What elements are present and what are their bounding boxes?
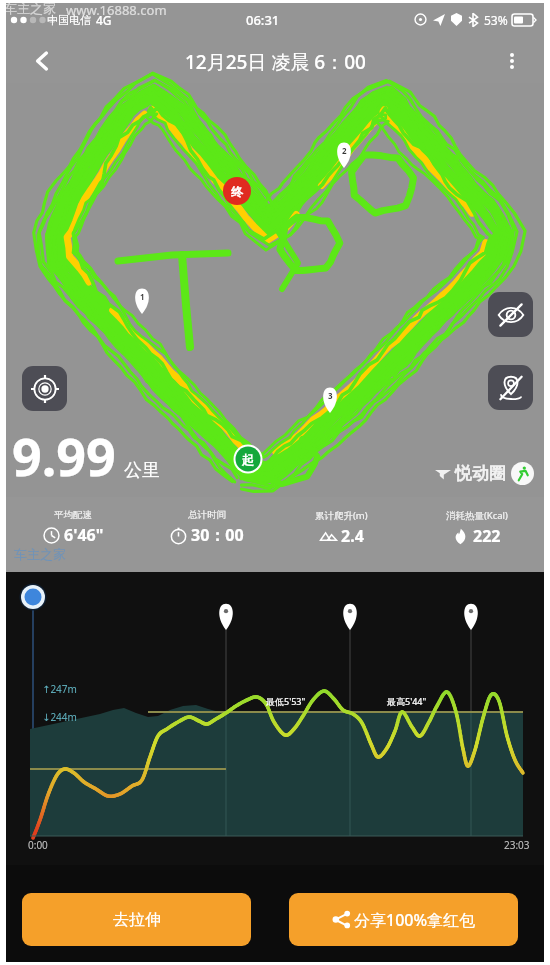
staticText: 0:00 — [28, 838, 48, 852]
staticText: 53% — [484, 12, 508, 28]
staticText: 最高5'44" — [387, 695, 427, 707]
staticText: www.16888.com — [66, 1, 167, 19]
button[interactable]: Map type off — [488, 365, 533, 410]
staticText: 06:31 — [246, 11, 280, 29]
staticText: 悦动圈 — [455, 463, 506, 484]
staticText: 4G — [96, 12, 112, 28]
button[interactable]: Back — [16, 35, 68, 87]
staticText: 23:03 — [504, 838, 530, 852]
staticText: 最低5'53" — [266, 695, 306, 707]
staticText: 9.99 — [12, 420, 116, 491]
staticText: ↓244m — [42, 710, 77, 724]
staticText: 6'46" — [64, 524, 104, 546]
staticText: 2 — [342, 145, 347, 156]
staticText: 12月25日 凌晨 6：00 — [185, 49, 366, 75]
staticText: 去拉伸 — [113, 910, 161, 930]
staticText: 222 — [473, 525, 501, 547]
staticText: 车主之家 — [4, 0, 56, 16]
staticText: 30：00 — [191, 524, 244, 546]
staticText: 3 — [328, 390, 333, 401]
staticText: 消耗热量(Kcal) — [446, 509, 508, 522]
button[interactable]: Hide track — [488, 292, 533, 337]
button[interactable]: 去拉伸 — [22, 893, 251, 946]
button[interactable]: Locate — [22, 366, 67, 411]
staticText: 中国电信 — [47, 13, 91, 27]
staticText: 2.4 — [341, 525, 364, 547]
staticText: 公里 — [124, 459, 160, 482]
staticText: 累计爬升(m) — [315, 509, 368, 522]
staticText: 1 — [140, 291, 145, 302]
button[interactable]: More options — [486, 35, 538, 87]
staticText: ↑247m — [42, 682, 77, 696]
staticText: 总计时间 — [188, 509, 226, 521]
staticText: 平均配速 — [54, 509, 92, 521]
staticText: 车主之家 — [14, 546, 66, 562]
button[interactable]: 分享100%拿红包 — [289, 893, 518, 946]
staticText: 分享100%拿红包 — [354, 909, 476, 931]
staticText: 起 — [242, 452, 254, 467]
staticText: 终 — [231, 184, 243, 199]
